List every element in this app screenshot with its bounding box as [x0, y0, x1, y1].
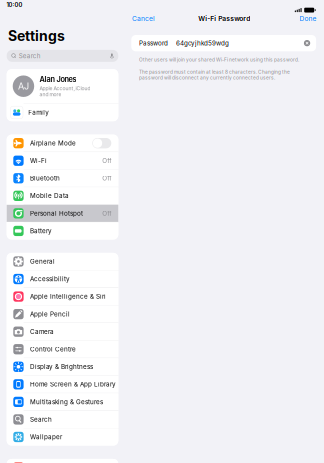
staticText: Personal Hotspot	[30, 210, 83, 217]
button[interactable]: Control Centre	[7, 341, 118, 358]
staticText: Accessibility	[30, 275, 70, 283]
button[interactable]: Cancel	[124, 12, 158, 25]
staticText: Settings	[8, 28, 65, 44]
staticText: Cancel	[132, 14, 155, 23]
button[interactable]: Bluetooth	[7, 170, 118, 187]
staticText: Control Centre	[30, 345, 76, 353]
staticText: Multitasking & Gestures	[30, 398, 103, 406]
button[interactable]: Done	[296, 12, 324, 25]
button[interactable]: Family	[7, 104, 118, 121]
staticText: Password	[139, 39, 168, 47]
staticText: Off	[102, 210, 111, 217]
button[interactable]: Personal Hotspot	[7, 205, 118, 222]
staticText: Other users will join your shared Wi-Fi …	[139, 57, 299, 63]
staticText: and more	[39, 91, 61, 97]
staticText: Search	[30, 416, 52, 423]
staticText: Off	[102, 174, 111, 182]
staticText: Alan Jones	[39, 75, 76, 84]
staticText: Apple Account, iCloud	[39, 85, 90, 91]
staticText: Wi-Fi Password	[198, 14, 250, 23]
staticText: Wallpaper	[30, 433, 62, 441]
button[interactable]: Home Screen & App Library	[7, 376, 118, 393]
staticText: 10:00	[7, 1, 23, 8]
button[interactable]: Accessibility	[7, 270, 118, 288]
staticText: Battery	[30, 227, 52, 235]
button[interactable]: Notifications	[7, 459, 118, 463]
button[interactable]: Battery	[7, 222, 118, 239]
button[interactable]: Apple Intelligence & Siri	[7, 288, 118, 305]
staticText: Bluetooth	[30, 174, 60, 182]
staticText: Mobile Data	[30, 192, 69, 200]
staticText: Apple Intelligence & Siri	[30, 293, 106, 300]
button[interactable]: Mobile Data	[7, 187, 118, 204]
staticText: General	[30, 258, 55, 265]
staticText: Home Screen & App Library	[30, 380, 116, 388]
button[interactable]: Wallpaper	[7, 428, 118, 445]
button[interactable]: Display & Brightness	[7, 358, 118, 375]
staticText: The password must contain at least 8 cha…	[139, 69, 290, 81]
staticText: Airplane Mode	[30, 139, 76, 147]
button[interactable]: Multitasking & Gestures	[7, 393, 118, 410]
button[interactable]: Camera	[7, 323, 118, 340]
button[interactable]: Wi-Fi	[7, 152, 118, 169]
button[interactable]: Search	[7, 411, 118, 428]
staticText: 64gcyjhkd59wdg	[176, 39, 229, 47]
button[interactable]: Airplane Mode	[7, 135, 118, 152]
button[interactable]: General	[7, 253, 118, 270]
staticText: Done	[299, 14, 316, 23]
staticText: Off	[102, 157, 111, 164]
staticText: Family	[28, 109, 49, 116]
staticText: Wi-Fi	[30, 157, 47, 164]
staticText: Camera	[30, 328, 54, 335]
button[interactable]: Clear text	[304, 40, 310, 46]
staticText: AJ	[18, 81, 29, 92]
staticText: Display & Brightness	[30, 363, 93, 371]
button[interactable]: AJ	[7, 69, 118, 103]
staticText: Apple Pencil	[30, 310, 70, 318]
staticText: Search	[19, 52, 41, 60]
button[interactable]: Apple Pencil	[7, 306, 118, 323]
